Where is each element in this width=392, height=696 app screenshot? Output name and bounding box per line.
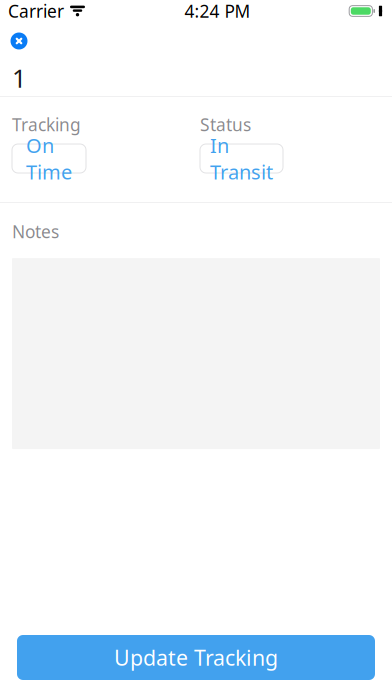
button[interactable]: Update Tracking [17,635,375,680]
staticText: 1 [12,61,26,95]
staticText: Status [200,113,251,136]
staticText: Update Tracking [114,643,278,672]
staticText: 4:24 PM [185,0,251,22]
staticText: In Transit [210,132,273,185]
staticText: Tracking [12,113,81,136]
button[interactable]: In Transit [200,144,283,173]
button[interactable]: On Time [12,144,86,173]
staticText: Notes [12,220,59,243]
staticText: Carrier [8,0,64,22]
button[interactable]: Close [4,26,34,56]
staticText: On Time [26,132,72,185]
